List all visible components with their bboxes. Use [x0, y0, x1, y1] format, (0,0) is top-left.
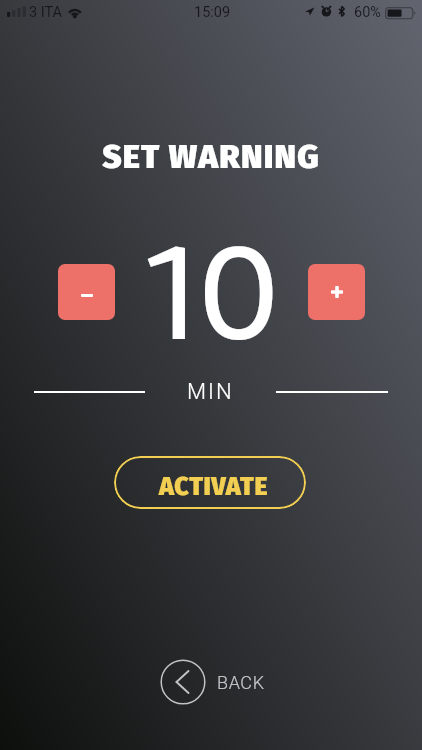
staticText: 60% — [354, 4, 381, 21]
staticText: 3 ITA — [29, 4, 63, 21]
staticText: BACK — [217, 672, 265, 693]
button[interactable]: Increase minutes — [308, 264, 365, 320]
staticText: 15:09 — [194, 4, 231, 21]
staticText: MIN — [187, 379, 234, 405]
button[interactable]: BACK — [160, 659, 265, 705]
staticText: 10 — [2, 188, 422, 398]
button[interactable]: Decrease minutes — [58, 264, 115, 320]
button[interactable]: ACTIVATE — [114, 456, 306, 509]
staticText: SET WARNING — [0, 137, 422, 177]
staticText: ACTIVATE — [159, 472, 268, 502]
